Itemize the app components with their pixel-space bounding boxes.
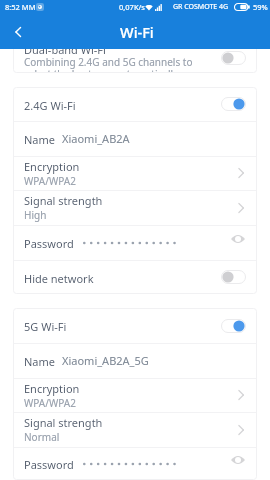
button[interactable]: Show password [228, 232, 248, 246]
staticText: Normal [24, 430, 60, 444]
staticText: Signal strength [24, 193, 103, 208]
button[interactable]: Switch off [221, 51, 246, 65]
button[interactable]: Password [13, 225, 257, 260]
button[interactable]: Encryption [13, 156, 257, 190]
button[interactable]: Hide network [13, 260, 257, 294]
staticText: Hide network [24, 271, 94, 286]
staticText: High [24, 208, 47, 222]
staticText: Password [24, 236, 74, 251]
button[interactable]: Name [13, 121, 257, 156]
staticText: Wi-Fi [120, 22, 154, 42]
button[interactable]: Show password [228, 453, 248, 467]
button[interactable]: Password [13, 447, 257, 480]
staticText: Encryption [24, 159, 80, 174]
staticText: Xiaomi_AB2A [62, 131, 130, 146]
staticText: WPA/WPA2 [24, 396, 76, 410]
button[interactable]: Signal strength [13, 412, 257, 447]
staticText: WPA/WPA2 [24, 174, 76, 188]
staticText: Encryption [24, 381, 80, 396]
button[interactable]: Switch off [222, 51, 247, 65]
button[interactable]: Switch on [221, 97, 246, 111]
button[interactable]: Name [13, 343, 257, 378]
button[interactable]: Back [0, 14, 36, 49]
staticText: 8:52 MM [5, 2, 36, 12]
staticText: 0,07K/s [119, 2, 145, 12]
button[interactable]: Signal strength [13, 190, 257, 225]
button[interactable]: 2.4G Wi-Fi [13, 87, 257, 121]
staticText: Signal strength [24, 415, 103, 430]
staticText: Combining 2.4G and 5G channels to select… [24, 55, 196, 73]
staticText: Password [24, 457, 74, 472]
button[interactable]: Switch off [221, 270, 246, 284]
staticText: Dual-band Wi-Fi [24, 42, 106, 57]
button[interactable]: Encryption [13, 378, 257, 412]
staticText: Xiaomi_AB2A_5G [62, 353, 149, 368]
button[interactable]: Switch on [221, 319, 246, 333]
button[interactable]: 5G Wi-Fi [13, 308, 257, 343]
staticText: Name [24, 132, 56, 147]
staticText: 2.4G Wi-Fi [24, 98, 76, 113]
staticText: GR COSMOTE 4G [173, 2, 229, 12]
staticText: Name [24, 354, 56, 369]
staticText: 59% [253, 2, 268, 12]
staticText: 5G Wi-Fi [24, 319, 67, 334]
